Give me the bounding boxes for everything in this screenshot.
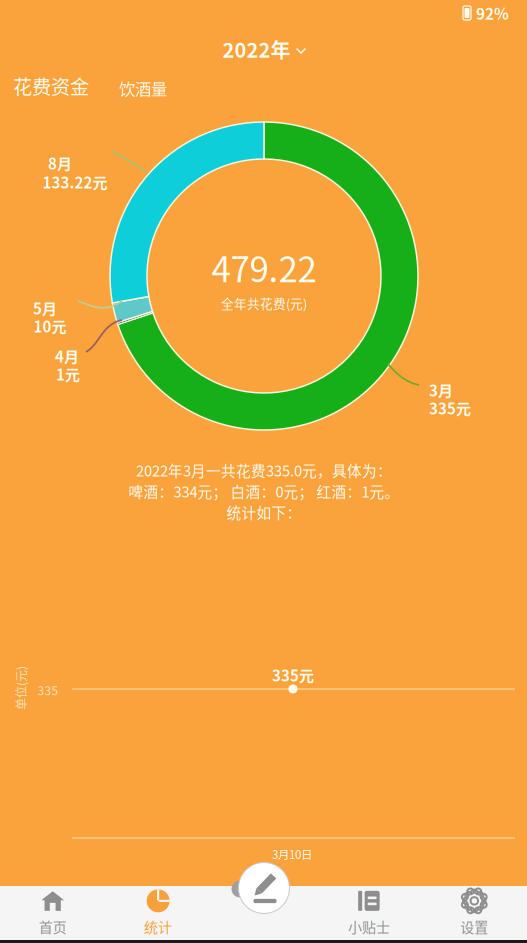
staticText: 全年共花费(元) (221, 294, 307, 312)
staticText: 饮酒量 (119, 76, 167, 100)
button[interactable]: 2022年 (216, 28, 311, 69)
staticText: 92% (476, 2, 509, 24)
staticText: 10元 (33, 315, 66, 337)
staticText: 335元 (429, 397, 471, 419)
button[interactable]: 饮酒量 (115, 72, 171, 104)
button[interactable]: 记账 (233, 857, 295, 919)
button[interactable]: 首页 (0, 886, 105, 940)
button[interactable]: 小贴士 (316, 886, 422, 940)
button[interactable]: 花费资金 (9, 68, 93, 104)
staticText: 小贴士 (348, 916, 390, 937)
staticText: 单位(元) (0, 679, 43, 697)
button[interactable]: 统计 (105, 886, 211, 940)
staticText: 1元 (56, 363, 80, 385)
staticText: 4月 (55, 345, 79, 367)
staticText: 统计 (144, 916, 172, 937)
staticText: 2022年 (222, 34, 290, 63)
staticText: 花费资金 (13, 72, 89, 100)
staticText: 啤酒：334元； 白酒：0元； 红酒：1元。 (128, 480, 399, 502)
staticText: 2022年3月一共花费335.0元，具体为： (136, 459, 392, 481)
staticText: 3月10日 (272, 846, 312, 862)
staticText: 335元 (272, 664, 314, 686)
staticText: 335 (37, 681, 58, 699)
staticText: 3月 (429, 379, 453, 401)
staticText: 设置 (460, 916, 488, 937)
staticText: 首页 (39, 916, 67, 937)
button[interactable]: 设置 (422, 886, 527, 940)
staticText: 479.22 (211, 242, 316, 292)
staticText: 133.22元 (42, 171, 107, 193)
staticText: 5月 (33, 297, 57, 319)
staticText: 8月 (48, 152, 72, 174)
staticText: 统计如下： (226, 501, 301, 523)
